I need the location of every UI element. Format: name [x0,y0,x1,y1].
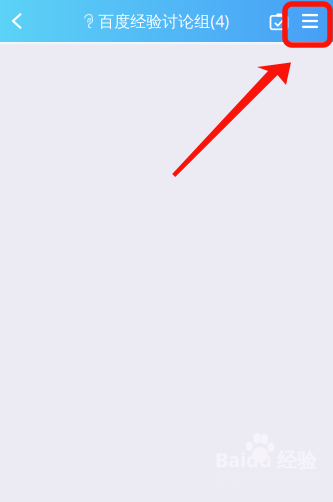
staticText: Baidu 经验 [215,446,317,473]
button[interactable]: Tasks [263,0,295,42]
button[interactable]: Menu [291,0,329,42]
staticText: 百度经验讨论组(4) [98,10,229,32]
button[interactable]: Back [0,0,34,42]
